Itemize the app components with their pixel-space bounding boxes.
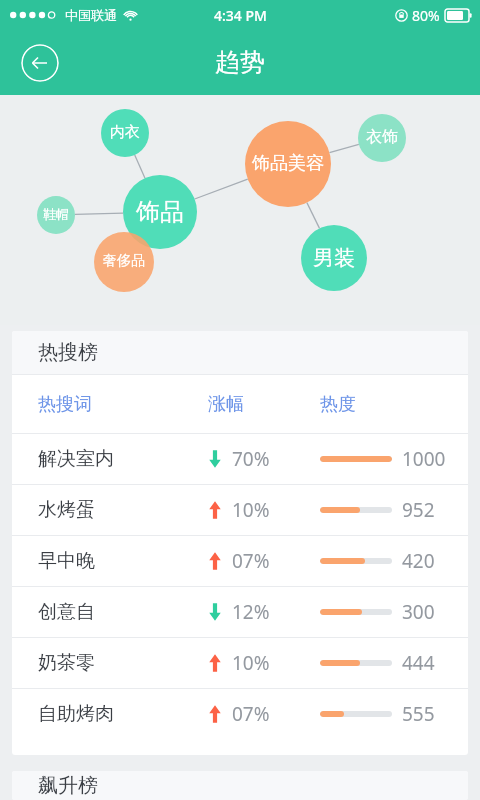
- staticText: 555: [402, 701, 435, 727]
- staticText: 奶茶零: [38, 651, 95, 675]
- staticText: 早中晚: [38, 549, 95, 573]
- staticText: 内衣: [110, 123, 140, 142]
- button[interactable]: 解决室内: [12, 434, 468, 484]
- staticText: 420: [402, 548, 435, 574]
- staticText: 07%: [232, 548, 270, 574]
- staticText: 水烤蛋: [38, 498, 95, 522]
- staticText: 自助烤肉: [38, 702, 114, 726]
- staticText: 10%: [232, 497, 270, 523]
- staticText: 12%: [232, 599, 270, 625]
- staticText: 热度: [320, 393, 356, 416]
- staticText: 飙升榜: [38, 773, 98, 798]
- button[interactable]: 飙升榜: [12, 771, 468, 800]
- staticText: 涨幅: [208, 393, 244, 416]
- staticText: 饰品美容: [252, 152, 324, 175]
- staticText: 热搜词: [38, 393, 92, 416]
- staticText: 创意自: [38, 600, 95, 624]
- staticText: 解决室内: [38, 447, 114, 471]
- staticText: 男装: [313, 245, 355, 271]
- staticText: 1000: [402, 446, 446, 472]
- button[interactable]: 自助烤肉: [12, 689, 468, 739]
- staticText: 4:34 PM: [214, 6, 267, 25]
- button[interactable]: 创意自: [12, 587, 468, 637]
- staticText: 鞋帽: [43, 206, 69, 222]
- staticText: 300: [402, 599, 435, 625]
- staticText: 热搜榜: [38, 340, 98, 365]
- button[interactable]: Back: [21, 44, 59, 82]
- staticText: 80%: [412, 6, 440, 25]
- staticText: 07%: [232, 701, 270, 727]
- staticText: 10%: [232, 650, 270, 676]
- button[interactable]: 热搜词: [12, 375, 468, 433]
- staticText: 中国联通: [65, 7, 117, 23]
- button[interactable]: 水烤蛋: [12, 485, 468, 535]
- staticText: 趋势: [215, 47, 265, 78]
- staticText: 444: [402, 650, 435, 676]
- staticText: 衣饰: [366, 127, 398, 147]
- staticText: 奢侈品: [103, 252, 145, 270]
- button[interactable]: 热搜榜: [12, 331, 468, 374]
- staticText: 70%: [232, 446, 270, 472]
- button[interactable]: 早中晚: [12, 536, 468, 586]
- button[interactable]: 奶茶零: [12, 638, 468, 688]
- staticText: 饰品: [136, 197, 184, 227]
- staticText: 952: [402, 497, 435, 523]
